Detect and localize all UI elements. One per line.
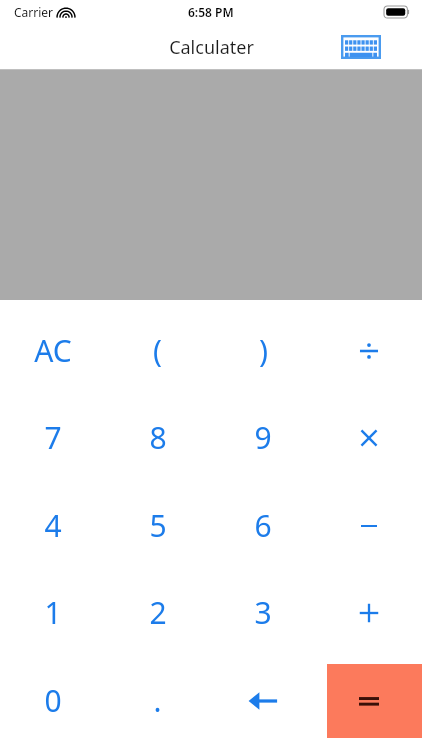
staticText: 6:58 PM (188, 4, 234, 20)
button[interactable]: AC (0, 313, 105, 388)
button[interactable]: 3 (210, 575, 316, 650)
staticText: 9 (254, 417, 272, 458)
button[interactable]: 4 (0, 488, 105, 563)
button[interactable]: Minus (316, 488, 422, 563)
staticText: AC (34, 330, 72, 371)
button[interactable]: ) (210, 313, 316, 388)
staticText: . (153, 680, 162, 721)
button[interactable]: Plus (316, 575, 422, 650)
staticText: 3 (254, 592, 272, 633)
button[interactable]: 7 (0, 400, 105, 475)
staticText: ( (153, 330, 162, 371)
button[interactable]: Divide (316, 313, 422, 388)
button[interactable]: 5 (105, 488, 210, 563)
button[interactable]: Backspace (210, 663, 316, 738)
staticText: 2 (149, 592, 167, 633)
staticText: 8 (149, 417, 167, 458)
button[interactable]: 8 (105, 400, 210, 475)
staticText: 1 (44, 592, 62, 633)
button[interactable]: ( (105, 313, 210, 388)
staticText: 0 (44, 680, 62, 721)
button[interactable]: Equals (327, 664, 422, 738)
staticText: 7 (44, 417, 62, 458)
button[interactable]: Keyboard (340, 34, 382, 60)
staticText: 6 (254, 505, 272, 546)
button[interactable]: 6 (210, 488, 316, 563)
button[interactable]: 9 (210, 400, 316, 475)
staticText: 4 (44, 505, 62, 546)
staticText: Carrier (14, 4, 54, 20)
button[interactable]: 0 (0, 663, 105, 738)
staticText: 5 (149, 505, 167, 546)
button[interactable]: 2 (105, 575, 210, 650)
staticText: ) (259, 330, 268, 371)
button[interactable]: . (105, 663, 210, 738)
button[interactable]: 1 (0, 575, 105, 650)
button[interactable]: Multiply (316, 400, 422, 475)
staticText: Calculater (169, 35, 254, 60)
